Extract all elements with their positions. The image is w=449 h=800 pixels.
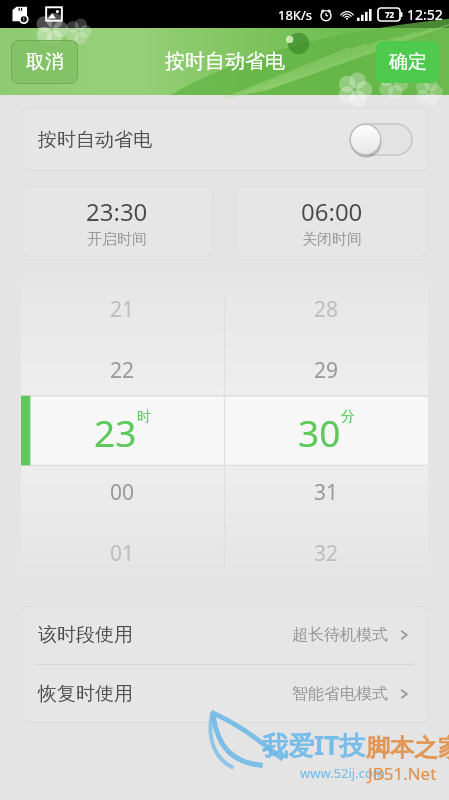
staticText: 时 bbox=[137, 408, 151, 426]
staticText: 智能省电模式 bbox=[292, 684, 388, 704]
staticText: www.52ij.com bbox=[300, 764, 385, 782]
button[interactable]: 22 bbox=[21, 340, 224, 401]
button[interactable]: 31 bbox=[224, 462, 428, 523]
button[interactable]: 01 bbox=[21, 523, 224, 584]
staticText: 29 bbox=[314, 356, 339, 385]
staticText: 22 bbox=[110, 356, 135, 385]
staticText: 21 bbox=[110, 295, 135, 324]
staticText: 脚本之家 bbox=[366, 733, 449, 763]
staticText: 恢复时使用 bbox=[38, 682, 133, 706]
staticText: 分 bbox=[341, 408, 355, 426]
staticText: JB51.Net bbox=[368, 762, 437, 785]
staticText: 该时段使用 bbox=[38, 623, 133, 647]
staticText: 31 bbox=[314, 478, 339, 507]
button[interactable]: 30 bbox=[224, 401, 428, 462]
staticText: 按时自动省电 bbox=[165, 49, 285, 74]
staticText: 28 bbox=[314, 295, 339, 324]
button[interactable]: 23:30 bbox=[21, 186, 213, 257]
button[interactable]: 23 bbox=[21, 401, 224, 462]
button[interactable]: 恢复时使用 bbox=[38, 664, 411, 723]
button[interactable]: 确定 bbox=[376, 41, 439, 83]
staticText: 30 bbox=[298, 407, 341, 457]
button[interactable]: 00 bbox=[21, 462, 224, 523]
button[interactable]: 按时自动省电 bbox=[21, 108, 428, 171]
staticText: 关闭时间 bbox=[302, 230, 362, 249]
staticText: 开启时间 bbox=[87, 230, 147, 249]
staticText: 23:30 bbox=[86, 195, 148, 228]
staticText: 01 bbox=[110, 539, 135, 568]
button[interactable]: 28 bbox=[224, 279, 428, 340]
button[interactable]: 该时段使用 bbox=[38, 606, 411, 664]
staticText: 18K/s bbox=[278, 6, 312, 24]
staticText: 72 bbox=[385, 9, 395, 20]
staticText: 32 bbox=[314, 539, 339, 568]
button[interactable]: 按时自动省电开关 bbox=[350, 124, 412, 155]
button[interactable]: 21 bbox=[21, 279, 224, 340]
staticText: 06:00 bbox=[301, 195, 363, 228]
button[interactable]: 29 bbox=[224, 340, 428, 401]
staticText: 23 bbox=[94, 407, 137, 457]
staticText: 12:52 bbox=[407, 5, 443, 24]
button[interactable]: 06:00 bbox=[235, 186, 428, 257]
button[interactable]: 取消 bbox=[11, 40, 78, 84]
staticText: 按时自动省电 bbox=[38, 128, 152, 152]
staticText: 00 bbox=[110, 478, 135, 507]
staticText: 确定 bbox=[389, 50, 427, 74]
staticText: 超长待机模式 bbox=[292, 625, 388, 645]
staticText: 取消 bbox=[26, 50, 64, 74]
button[interactable]: 32 bbox=[224, 523, 428, 584]
staticText: 我爱IT技 bbox=[262, 727, 366, 763]
